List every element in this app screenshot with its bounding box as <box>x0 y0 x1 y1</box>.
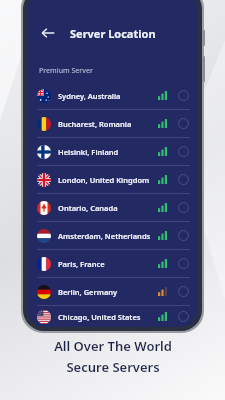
button[interactable]: Back <box>37 22 59 44</box>
button[interactable]: Berlin, Germany <box>27 278 198 305</box>
button[interactable]: Paris, France <box>27 250 198 277</box>
staticText: London, United Kingdom <box>58 175 158 185</box>
button[interactable]: Select server <box>177 117 190 130</box>
button[interactable]: Bucharest, Romania <box>27 110 198 137</box>
staticText: Helsinki, Finland <box>58 147 158 157</box>
button[interactable]: Select server <box>177 145 190 158</box>
staticText: Berlin, Germany <box>58 287 158 297</box>
button[interactable]: Chicago, United States <box>27 306 198 327</box>
button[interactable]: London, United Kingdom <box>27 166 198 193</box>
button[interactable]: Select server <box>177 229 190 242</box>
button[interactable]: Amsterdam, Netherlands <box>27 222 198 249</box>
staticText: Premium Server <box>39 66 93 76</box>
button[interactable]: Select server <box>177 201 190 214</box>
staticText: Secure Servers <box>66 358 160 376</box>
button[interactable]: Sydney, Australia <box>27 82 198 109</box>
staticText: Sydney, Australia <box>58 91 158 101</box>
button[interactable]: Ontario, Canada <box>27 194 198 221</box>
staticText: All Over The World <box>54 337 172 355</box>
staticText: Ontario, Canada <box>58 203 158 213</box>
button[interactable]: Select server <box>177 89 190 102</box>
button[interactable]: Helsinki, Finland <box>27 138 198 165</box>
staticText: Amsterdam, Netherlands <box>58 231 158 241</box>
staticText: Bucharest, Romania <box>58 119 158 129</box>
button[interactable]: Select server <box>177 310 190 323</box>
staticText: Server Location <box>70 26 156 41</box>
staticText: Chicago, United States <box>58 312 158 322</box>
staticText: Paris, France <box>58 259 158 269</box>
button[interactable]: Select server <box>177 285 190 298</box>
button[interactable]: Select server <box>177 257 190 270</box>
button[interactable]: Select server <box>177 173 190 186</box>
